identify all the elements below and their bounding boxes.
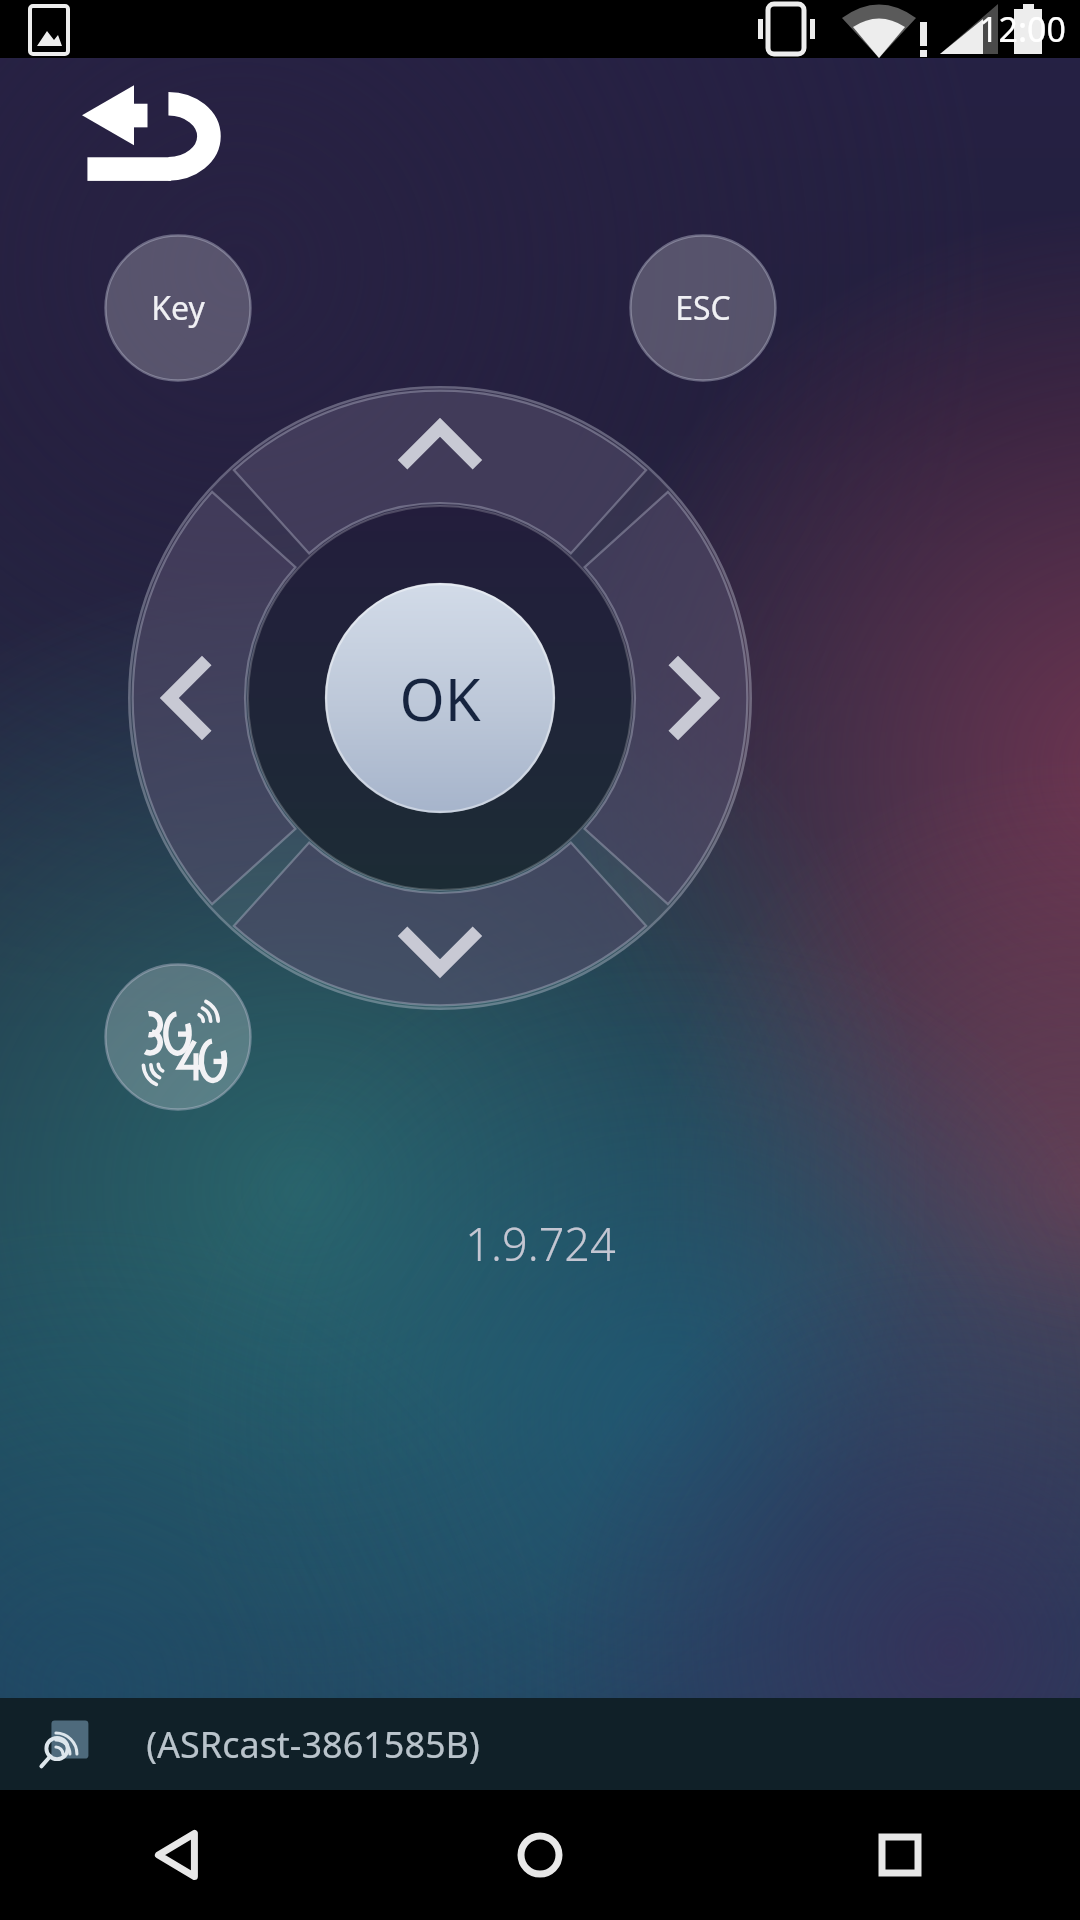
staticText: OK [399, 659, 481, 738]
button[interactable]: Up [315, 386, 565, 573]
button[interactable]: ESC [629, 234, 777, 382]
button[interactable]: Down [315, 823, 565, 1010]
staticText: Key [151, 286, 205, 330]
button[interactable]: Home [485, 1800, 595, 1910]
staticText: 1.9.724 [465, 1213, 616, 1274]
button[interactable]: Left [128, 573, 315, 823]
button[interactable]: 3G 4G network [104, 963, 252, 1111]
staticText: 12:00 [979, 6, 1066, 52]
staticText: ESC [675, 286, 731, 330]
button[interactable]: Recents [845, 1800, 955, 1910]
button[interactable]: Right [565, 573, 752, 823]
button[interactable]: Key [104, 234, 252, 382]
button[interactable]: OK [325, 583, 555, 813]
button[interactable]: (ASRcast-3861585B) [0, 1698, 1080, 1790]
staticText: (ASRcast-3861585B) [146, 1720, 480, 1769]
button[interactable]: Back [80, 78, 215, 183]
button[interactable]: Back [125, 1800, 235, 1910]
